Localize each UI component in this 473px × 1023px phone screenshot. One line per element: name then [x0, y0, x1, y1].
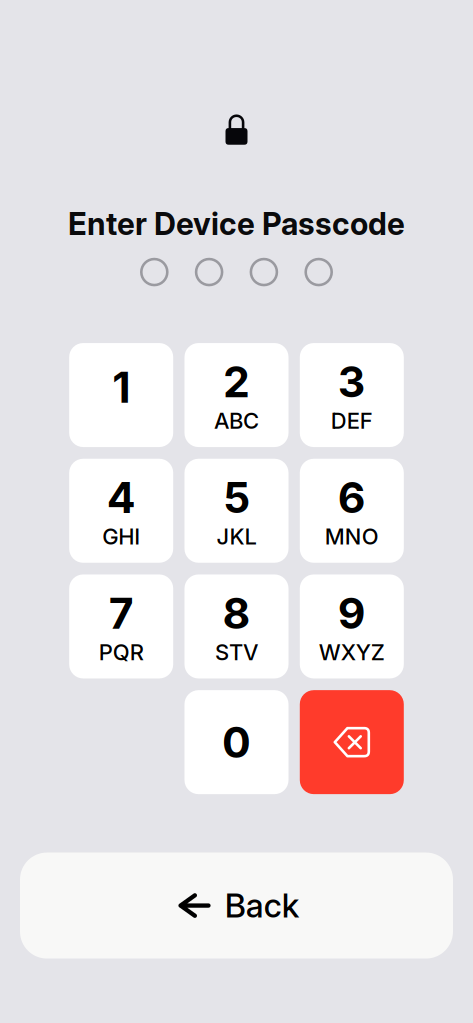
- button[interactable]: 8: [184, 574, 288, 678]
- staticText: JKL: [216, 523, 256, 550]
- staticText: MNO: [325, 523, 379, 550]
- staticText: STV: [215, 639, 258, 666]
- button[interactable]: Back: [20, 853, 453, 959]
- button[interactable]: 3: [300, 343, 404, 447]
- staticText: DEF: [331, 408, 373, 434]
- button[interactable]: 6: [300, 459, 404, 563]
- button[interactable]: 2: [184, 343, 288, 447]
- staticText: 8: [222, 587, 250, 639]
- staticText: 5: [223, 472, 250, 523]
- staticText: 0: [222, 716, 251, 768]
- staticText: GHI: [102, 523, 140, 550]
- staticText: ABC: [214, 408, 259, 434]
- staticText: Enter Device Passcode: [68, 205, 405, 242]
- staticText: WXYZ: [319, 639, 385, 666]
- button[interactable]: 9: [300, 574, 404, 678]
- staticText: 9: [338, 587, 366, 639]
- staticText: 2: [223, 356, 250, 407]
- staticText: 6: [338, 472, 366, 523]
- button[interactable]: 0: [184, 690, 288, 794]
- button[interactable]: 1: [69, 343, 173, 447]
- staticText: 3: [338, 356, 366, 407]
- staticText: 7: [109, 587, 134, 639]
- button[interactable]: 4: [69, 459, 173, 563]
- staticText: PQR: [99, 639, 144, 666]
- staticText: Back: [225, 886, 300, 925]
- button[interactable]: 5: [184, 459, 288, 563]
- staticText: 4: [107, 472, 136, 523]
- button[interactable]: 7: [69, 574, 173, 678]
- staticText: 1: [112, 361, 130, 413]
- button[interactable]: Delete: [300, 690, 404, 794]
